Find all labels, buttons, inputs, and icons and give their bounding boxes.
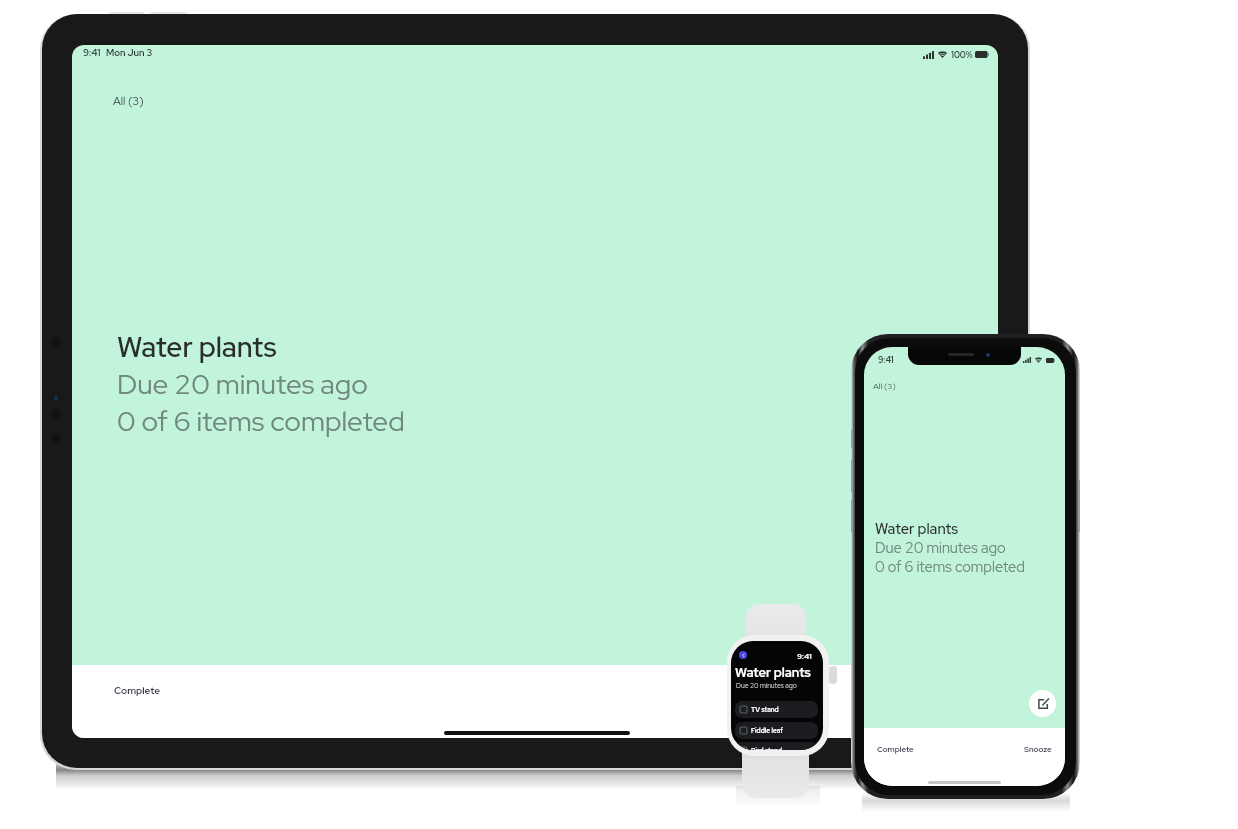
staticText: All (3) bbox=[873, 380, 896, 391]
staticText: Due 20 minutes ago bbox=[875, 538, 1006, 557]
staticText: Due 20 minutes ago bbox=[736, 681, 797, 690]
staticText: Water plants bbox=[735, 664, 811, 681]
button[interactable]: All (3) bbox=[113, 93, 144, 108]
staticText: Water plants bbox=[875, 519, 959, 538]
button[interactable]: Complete bbox=[877, 744, 914, 755]
staticText: TV stand bbox=[751, 705, 779, 714]
staticText: Complete bbox=[114, 684, 160, 697]
staticText: 0 of 6 items completed bbox=[875, 557, 1025, 576]
staticText: Snooze bbox=[1024, 744, 1052, 755]
staticText: Complete bbox=[877, 744, 914, 755]
staticText: Fiddle leaf bbox=[751, 726, 783, 735]
button[interactable]: Snooze bbox=[1024, 744, 1052, 755]
staticText: Bird stand bbox=[751, 746, 783, 750]
staticText: Due 20 minutes ago bbox=[117, 365, 368, 402]
button[interactable]: TV stand bbox=[735, 701, 818, 718]
button[interactable]: Bird stand bbox=[735, 742, 818, 750]
staticText: Mon Jun 3 bbox=[106, 46, 153, 59]
button[interactable]: Back bbox=[739, 651, 747, 659]
button[interactable]: Fiddle leaf bbox=[735, 722, 818, 739]
staticText: All (3) bbox=[113, 93, 144, 108]
button[interactable]: All (3) bbox=[873, 380, 896, 391]
staticText: 0 of 6 items completed bbox=[117, 402, 405, 439]
button[interactable]: Complete bbox=[114, 684, 160, 697]
button[interactable]: Create task bbox=[1029, 690, 1056, 717]
staticText: 9:41 bbox=[797, 651, 812, 662]
staticText: Water plants bbox=[117, 328, 277, 365]
staticText: 9:41 bbox=[83, 46, 101, 59]
staticText: 9:41 bbox=[878, 354, 894, 365]
staticText: 100% bbox=[951, 49, 973, 60]
